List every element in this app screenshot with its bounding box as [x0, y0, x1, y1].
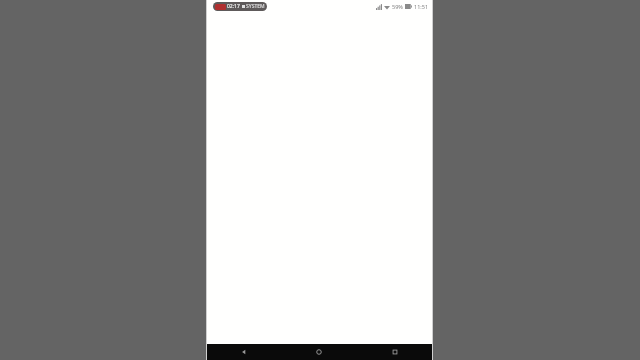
button[interactable]: 02:17	[213, 2, 267, 11]
staticText: 59%	[392, 3, 403, 10]
button[interactable]: Back	[206, 344, 281, 360]
staticText: 11:51	[414, 3, 429, 10]
staticText: 02:17	[227, 3, 240, 10]
button[interactable]: Home	[281, 344, 357, 360]
staticText: SYSTEM	[246, 3, 265, 10]
button[interactable]: Recent apps	[357, 344, 433, 360]
